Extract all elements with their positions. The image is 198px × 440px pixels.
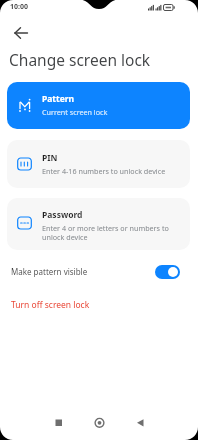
staticText: Current screen lock xyxy=(42,107,108,117)
button[interactable]: Make pattern visible xyxy=(0,258,198,286)
staticText: Enter 4 or more letters or numbers to un… xyxy=(42,223,169,243)
button[interactable]: Password xyxy=(7,198,190,250)
staticText: Password xyxy=(42,209,83,221)
staticText: Change screen lock xyxy=(9,49,151,70)
staticText: PIN xyxy=(42,152,58,164)
button[interactable] xyxy=(122,412,160,436)
button[interactable]: Pattern xyxy=(7,82,190,129)
button[interactable]: Turn off screen lock xyxy=(11,299,90,311)
staticText: Make pattern visible xyxy=(11,266,88,277)
staticText: Pattern xyxy=(42,93,75,105)
button[interactable] xyxy=(40,412,78,436)
staticText: Enter 4-16 numbers to unlock device xyxy=(42,166,166,176)
button[interactable] xyxy=(80,412,118,436)
staticText: 10:00 xyxy=(10,2,28,12)
button[interactable]: PIN xyxy=(7,140,190,188)
